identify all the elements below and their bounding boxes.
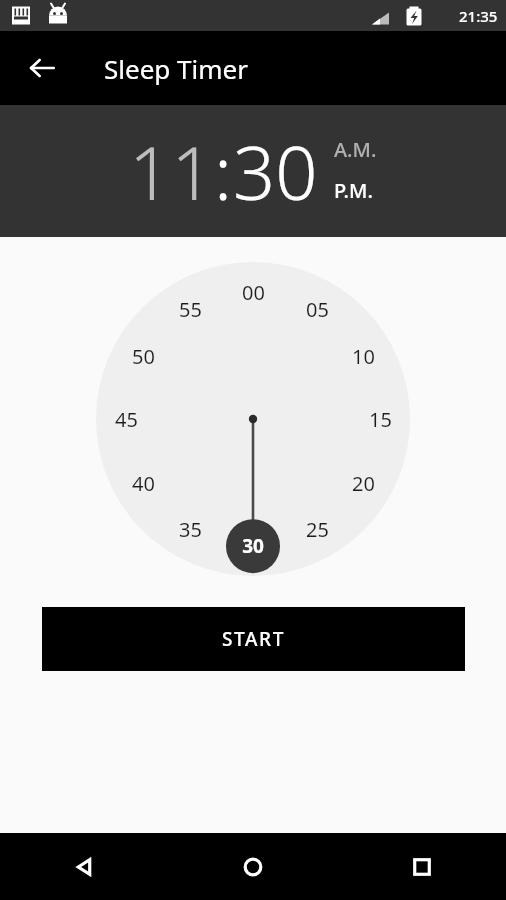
staticText: : xyxy=(214,121,233,222)
button[interactable]: START xyxy=(42,607,465,671)
staticText: 30 xyxy=(233,121,318,222)
button[interactable]: Home xyxy=(168,833,337,900)
staticText: 05 xyxy=(306,296,329,323)
button[interactable]: Back xyxy=(18,44,66,92)
staticText: 50 xyxy=(132,343,155,370)
staticText: 15 xyxy=(369,406,392,433)
staticText: 10 xyxy=(352,343,375,370)
staticText: 30 xyxy=(242,533,264,559)
button[interactable]: P.M. xyxy=(334,175,373,206)
staticText: 40 xyxy=(132,470,155,497)
button[interactable]: Back xyxy=(0,833,168,900)
staticText: 45 xyxy=(115,406,138,433)
button[interactable]: 30 xyxy=(233,121,318,222)
staticText: 21:35 xyxy=(459,6,498,26)
staticText: A.M. xyxy=(334,136,377,163)
staticText: START xyxy=(222,626,285,652)
staticText: 55 xyxy=(179,296,202,323)
staticText: 11 xyxy=(129,121,214,222)
staticText: 20 xyxy=(352,470,375,497)
button[interactable]: 11 xyxy=(129,121,214,222)
staticText: 00 xyxy=(242,279,265,306)
staticText: 35 xyxy=(179,516,202,543)
staticText: P.M. xyxy=(334,177,373,204)
button[interactable]: Recents xyxy=(337,833,506,900)
button[interactable]: Minute picker xyxy=(96,262,410,576)
staticText: Sleep Timer xyxy=(104,51,248,86)
button[interactable]: A.M. xyxy=(334,134,377,165)
staticText: 25 xyxy=(306,516,329,543)
